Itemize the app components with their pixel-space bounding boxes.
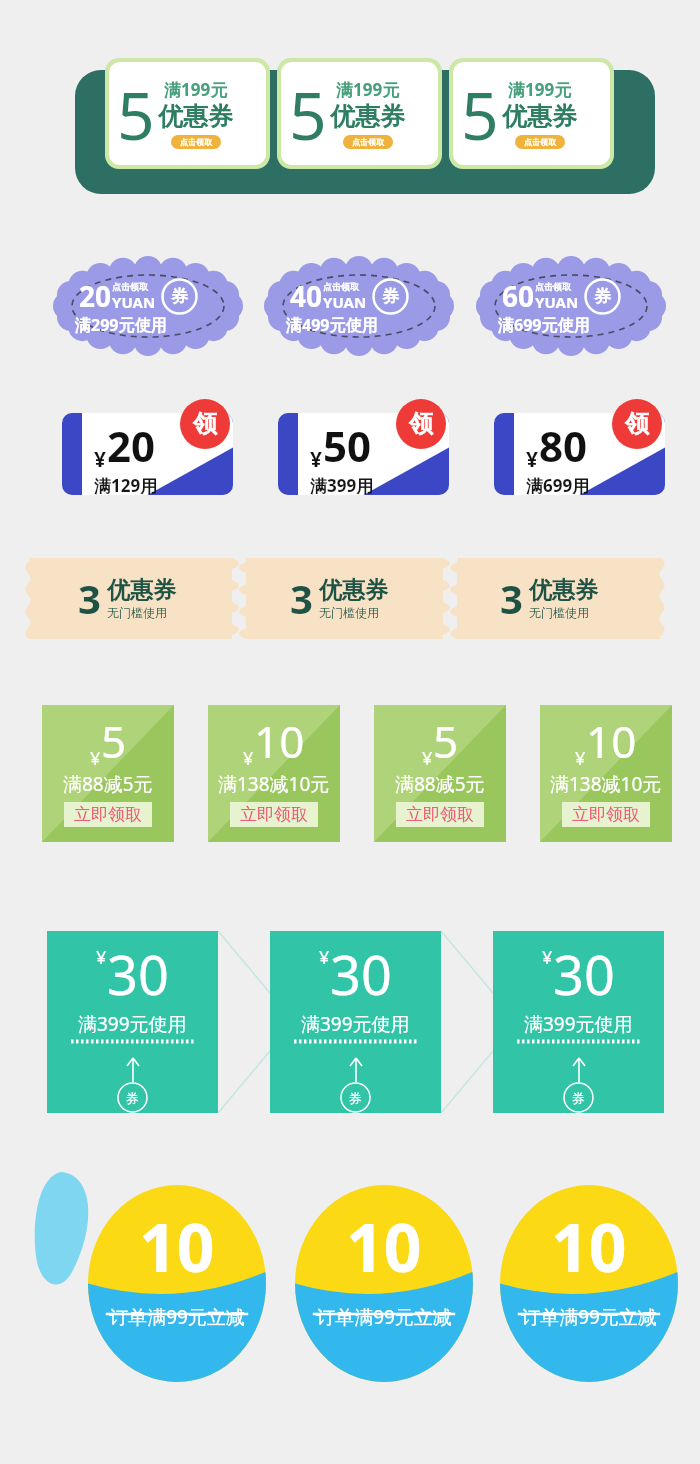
staticText: YUAN xyxy=(535,292,579,312)
button[interactable]: 3 xyxy=(290,570,440,626)
staticText: 点击领取 xyxy=(323,281,359,292)
staticText: 60 xyxy=(502,277,535,315)
staticText: ¥ xyxy=(422,746,433,771)
staticText: 优惠券 xyxy=(107,576,176,605)
button[interactable]: 10 xyxy=(88,1185,266,1382)
staticText: 点击领取 xyxy=(524,137,556,147)
button[interactable]: 立即领取 xyxy=(562,802,650,827)
button[interactable]: 点击领取 xyxy=(515,135,565,149)
button[interactable]: 5 xyxy=(277,58,442,169)
staticText: 20 xyxy=(107,417,156,474)
staticText: 满138减10元 xyxy=(550,771,662,797)
staticText: 5 xyxy=(461,69,499,159)
staticText: 无门槛使用 xyxy=(107,605,167,620)
button[interactable]: ¥ xyxy=(278,413,449,495)
staticText: 3 xyxy=(500,571,523,625)
staticText: 满699用 xyxy=(526,474,590,495)
button[interactable]: ¥ xyxy=(62,413,233,495)
staticText: ¥ xyxy=(96,945,107,970)
staticText: ¥ xyxy=(243,746,254,771)
staticText: 立即领取 xyxy=(240,804,308,825)
staticText: 10 xyxy=(254,711,305,771)
staticText: 满199元 xyxy=(336,78,400,101)
staticText: ¥ xyxy=(90,746,101,771)
staticText: 订单满99元立减 xyxy=(521,1304,657,1330)
staticText: 订单满99元立减 xyxy=(316,1304,452,1330)
staticText: 立即领取 xyxy=(572,804,640,825)
staticText: 优惠券 xyxy=(502,101,577,132)
button[interactable]: ¥ xyxy=(374,705,506,842)
staticText: 领 xyxy=(409,409,433,439)
staticText: 券 xyxy=(126,1090,139,1106)
staticText: 订单满99元立减 xyxy=(109,1304,245,1330)
staticText: 3 xyxy=(290,571,313,625)
staticText: 点击领取 xyxy=(535,281,571,292)
staticText: 优惠券 xyxy=(319,576,388,605)
staticText: 点击领取 xyxy=(352,137,384,147)
button[interactable]: 点击领取 xyxy=(343,135,393,149)
staticText: ¥ xyxy=(542,945,553,970)
staticText: 40 xyxy=(290,277,323,315)
staticText: 满499元使用 xyxy=(286,314,378,336)
staticText: 30 xyxy=(330,937,392,1011)
staticText: 10 xyxy=(139,1201,215,1291)
staticText: 券 xyxy=(171,286,188,307)
staticText: 满129用 xyxy=(94,474,158,495)
staticText: 满399元使用 xyxy=(301,1011,410,1037)
staticText: 立即领取 xyxy=(406,804,474,825)
staticText: 满88减5元 xyxy=(63,771,153,797)
staticText: 50 xyxy=(323,417,372,474)
button[interactable]: ¥ xyxy=(42,705,174,842)
button[interactable]: ¥ xyxy=(208,705,340,842)
button[interactable]: 领取优惠券 xyxy=(396,399,446,449)
staticText: 立即领取 xyxy=(74,804,142,825)
staticText: 满399用 xyxy=(310,474,374,495)
button[interactable]: 20 xyxy=(79,277,219,337)
staticText: 优惠券 xyxy=(158,101,233,132)
button[interactable]: ¥ xyxy=(493,931,664,1113)
button[interactable]: 领取优惠券 xyxy=(612,399,662,449)
button[interactable]: 10 xyxy=(500,1185,678,1382)
staticText: 优惠券 xyxy=(330,101,405,132)
staticText: 领 xyxy=(625,409,649,439)
staticText: 5 xyxy=(289,69,327,159)
staticText: 满199元 xyxy=(508,78,572,101)
staticText: ¥ xyxy=(310,445,323,474)
button[interactable]: 立即领取 xyxy=(64,802,152,827)
staticText: 点击领取 xyxy=(180,137,212,147)
staticText: 5 xyxy=(433,711,459,771)
button[interactable]: 3 xyxy=(78,570,228,626)
staticText: 满299元使用 xyxy=(75,314,167,336)
staticText: ¥ xyxy=(575,746,586,771)
staticText: 券 xyxy=(382,286,399,307)
staticText: 券 xyxy=(572,1090,585,1106)
staticText: 30 xyxy=(553,937,615,1011)
button[interactable]: ¥ xyxy=(47,931,218,1113)
staticText: ¥ xyxy=(319,945,330,970)
staticText: ¥ xyxy=(94,445,107,474)
button[interactable]: 立即领取 xyxy=(396,802,484,827)
button[interactable]: 40 xyxy=(290,277,430,337)
button[interactable]: ¥ xyxy=(270,931,441,1113)
staticText: 10 xyxy=(551,1201,627,1291)
staticText: 3 xyxy=(78,571,101,625)
staticText: ¥ xyxy=(526,445,539,474)
button[interactable]: 5 xyxy=(105,58,270,169)
staticText: YUAN xyxy=(112,292,156,312)
staticText: 5 xyxy=(117,69,155,159)
button[interactable]: 10 xyxy=(295,1185,473,1382)
staticText: 5 xyxy=(101,711,127,771)
staticText: 领 xyxy=(193,409,217,439)
button[interactable]: 点击领取 xyxy=(171,135,221,149)
staticText: 满399元使用 xyxy=(78,1011,187,1037)
button[interactable]: 立即领取 xyxy=(230,802,318,827)
button[interactable]: 5 xyxy=(449,58,614,169)
staticText: 点击领取 xyxy=(112,281,148,292)
button[interactable]: ¥ xyxy=(540,705,672,842)
button[interactable]: 领取优惠券 xyxy=(180,399,230,449)
staticText: 无门槛使用 xyxy=(529,605,589,620)
staticText: 80 xyxy=(539,417,588,474)
button[interactable]: ¥ xyxy=(494,413,665,495)
button[interactable]: 60 xyxy=(502,277,642,337)
button[interactable]: 3 xyxy=(500,570,650,626)
